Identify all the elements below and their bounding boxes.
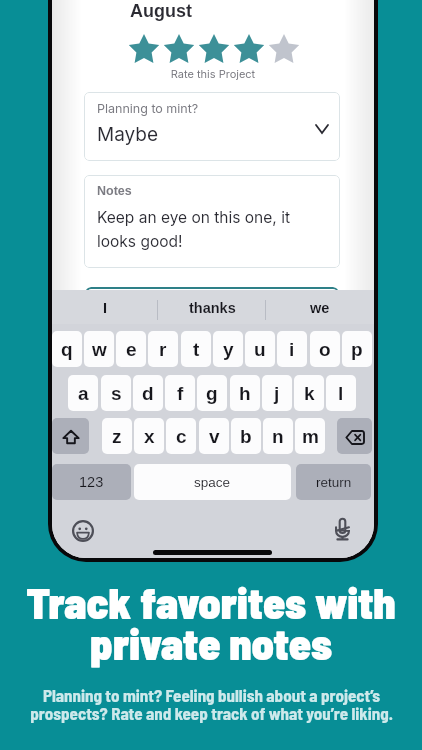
button[interactable]: i (277, 331, 307, 367)
staticText: Rate this Project (52, 67, 374, 80)
staticText: Planning to mint? Feeling bullish about … (30, 685, 393, 724)
button[interactable]: j (262, 375, 292, 411)
staticText: thanks (189, 300, 236, 316)
staticText: a (78, 383, 89, 404)
staticText: Planning to mint? (97, 101, 199, 116)
staticText: w (92, 339, 107, 360)
button[interactable]: Rate 4 stars (233, 34, 265, 66)
button[interactable]: u (245, 331, 275, 367)
button[interactable]: b (231, 418, 261, 454)
button[interactable]: Rate 5 stars (268, 34, 300, 66)
button[interactable]: v (199, 418, 229, 454)
button[interactable]: z (102, 418, 132, 454)
staticText: y (223, 339, 234, 360)
button[interactable]: Return (296, 464, 371, 500)
staticText: e (126, 339, 137, 360)
button[interactable]: Rate 3 stars (198, 34, 230, 66)
staticText: August (130, 1, 192, 21)
staticText: k (304, 383, 315, 404)
button[interactable]: g (197, 375, 227, 411)
button[interactable]: thanks (162, 298, 262, 318)
button[interactable]: r (148, 331, 178, 367)
button[interactable]: s (101, 375, 131, 411)
button[interactable]: Dictation (334, 518, 351, 541)
button[interactable]: h (230, 375, 260, 411)
staticText: m (302, 426, 319, 447)
staticText: 123 (79, 474, 104, 490)
button[interactable]: k (294, 375, 324, 411)
staticText: p (351, 339, 363, 360)
button[interactable]: x (134, 418, 164, 454)
staticText: r (159, 339, 167, 360)
button[interactable]: d (133, 375, 163, 411)
button[interactable]: Rate 2 stars (163, 34, 195, 66)
staticText: Keep an eye on this one, it looks good! (97, 208, 290, 251)
staticText: I (103, 300, 108, 316)
button[interactable]: p (342, 331, 372, 367)
button[interactable]: I (55, 298, 155, 318)
staticText: z (112, 426, 122, 447)
staticText: space (194, 475, 231, 490)
button[interactable]: Notes (84, 175, 340, 268)
button[interactable]: space (134, 464, 291, 500)
staticText: x (144, 426, 155, 447)
staticText: u (254, 339, 266, 360)
staticText: s (111, 383, 122, 404)
staticText: we (310, 300, 330, 316)
staticText: o (319, 339, 331, 360)
button[interactable]: c (166, 418, 196, 454)
staticText: n (272, 426, 284, 447)
staticText: t (193, 339, 200, 360)
button[interactable]: l (326, 375, 356, 411)
button[interactable]: t (181, 331, 211, 367)
button[interactable]: Numbers (52, 464, 131, 500)
button[interactable]: Emoji (72, 520, 94, 542)
staticText: l (338, 383, 344, 404)
button[interactable]: q (52, 331, 82, 367)
staticText: c (176, 426, 187, 447)
staticText: Track favorites with private notes (26, 575, 396, 668)
button[interactable]: y (213, 331, 243, 367)
staticText: d (142, 383, 154, 404)
staticText: f (177, 383, 184, 404)
staticText: q (61, 339, 73, 360)
button[interactable]: Rate 1 stars (128, 34, 160, 66)
staticText: Notes (97, 184, 132, 198)
button[interactable]: Planning to mint? (84, 92, 340, 161)
button[interactable]: w (84, 331, 114, 367)
button[interactable]: a (68, 375, 98, 411)
button[interactable]: o (310, 331, 340, 367)
button[interactable]: m (295, 418, 325, 454)
staticText: Maybe (97, 123, 159, 146)
button[interactable]: Shift (52, 418, 89, 454)
button[interactable]: e (116, 331, 146, 367)
button[interactable]: n (263, 418, 293, 454)
staticText: j (274, 383, 280, 404)
button[interactable]: f (165, 375, 195, 411)
staticText: g (206, 383, 218, 404)
staticText: b (240, 426, 252, 447)
button[interactable]: we (270, 298, 370, 318)
staticText: v (209, 426, 220, 447)
staticText: return (316, 475, 352, 490)
staticText: i (289, 339, 295, 360)
button[interactable]: Backspace (337, 418, 372, 454)
staticText: h (239, 383, 251, 404)
